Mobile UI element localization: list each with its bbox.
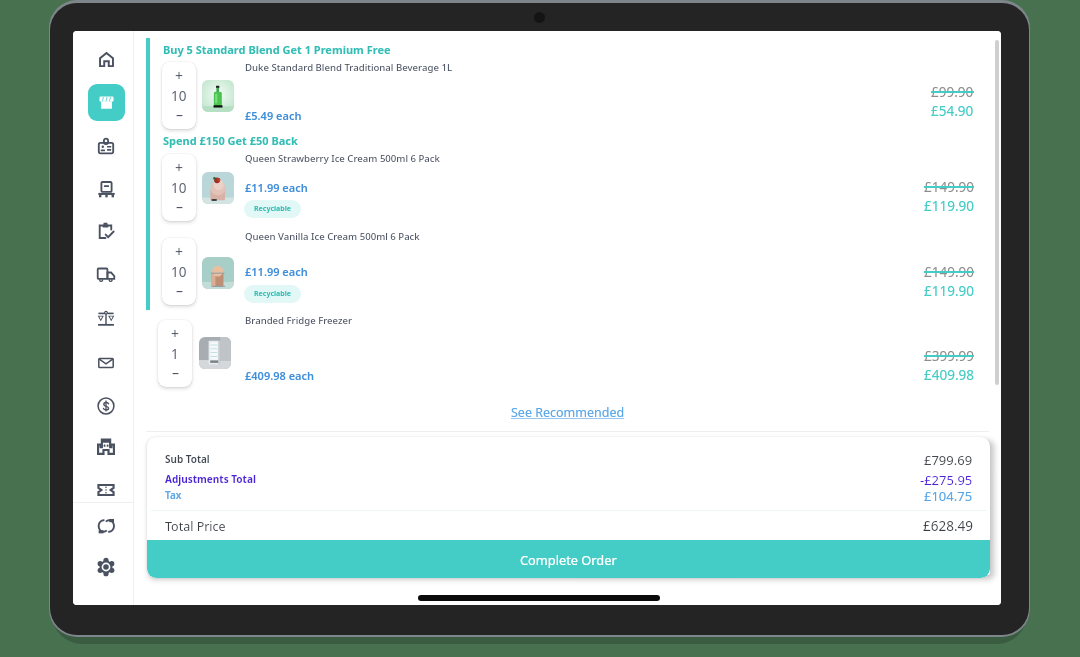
button[interactable]: Tasks bbox=[84, 213, 128, 249]
button[interactable]: Delivery bbox=[84, 257, 128, 293]
staticText: + bbox=[175, 158, 184, 177]
staticText: – bbox=[172, 363, 179, 382]
button[interactable]: Decrease quantity bbox=[162, 195, 196, 218]
button[interactable]: Account bbox=[84, 128, 128, 164]
staticText: See Recommended bbox=[511, 404, 625, 421]
staticText: + bbox=[175, 66, 184, 85]
button[interactable]: Depots bbox=[84, 428, 128, 464]
staticText: £149.90 bbox=[924, 263, 974, 281]
button[interactable]: Payments bbox=[84, 388, 128, 424]
staticText: + bbox=[171, 324, 180, 343]
staticText: £628.49 bbox=[923, 517, 973, 535]
staticText: £11.99 each bbox=[245, 180, 308, 195]
staticText: Spend £150 Get £50 Back bbox=[163, 133, 298, 148]
staticText: £11.99 each bbox=[245, 264, 308, 279]
button[interactable]: Store bbox=[88, 84, 125, 121]
button[interactable]: Home bbox=[84, 41, 128, 77]
button[interactable]: Pallets bbox=[84, 171, 128, 207]
staticText: £54.90 bbox=[931, 102, 974, 120]
staticText: – bbox=[176, 197, 183, 216]
button[interactable]: Increase quantity bbox=[162, 156, 196, 179]
staticText: 10 bbox=[171, 87, 187, 105]
button[interactable]: Increase quantity bbox=[162, 240, 196, 263]
button[interactable]: Messages bbox=[84, 345, 128, 381]
button[interactable]: Decrease quantity bbox=[162, 279, 196, 302]
staticText: Queen Strawberry Ice Cream 500ml 6 Pack bbox=[245, 152, 440, 165]
staticText: Total Price bbox=[165, 518, 226, 535]
button[interactable]: Increase quantity bbox=[158, 322, 192, 345]
button[interactable]: Complete Order bbox=[147, 540, 990, 578]
staticText: Duke Standard Blend Traditional Beverage… bbox=[245, 61, 453, 74]
staticText: 10 bbox=[171, 179, 187, 197]
staticText: £149.90 bbox=[924, 178, 974, 196]
staticText: Buy 5 Standard Blend Get 1 Premium Free bbox=[163, 42, 391, 57]
staticText: Tax bbox=[165, 488, 182, 502]
staticText: £119.90 bbox=[924, 197, 974, 215]
button[interactable]: Refresh bbox=[84, 508, 128, 544]
staticText: -£275.95 bbox=[920, 471, 973, 489]
staticText: Sub Total bbox=[165, 452, 210, 466]
staticText: Recyclable bbox=[254, 204, 291, 214]
staticText: Branded Fridge Freezer bbox=[245, 314, 353, 327]
staticText: 1 bbox=[171, 345, 179, 363]
staticText: Complete Order bbox=[520, 551, 617, 568]
staticText: £99.90 bbox=[931, 83, 974, 101]
button[interactable]: Increase quantity bbox=[162, 64, 196, 87]
staticText: £409.98 bbox=[924, 366, 974, 384]
staticText: – bbox=[176, 105, 183, 124]
staticText: £799.69 bbox=[924, 451, 973, 469]
staticText: + bbox=[175, 242, 184, 261]
staticText: Queen Vanilla Ice Cream 500ml 6 Pack bbox=[245, 230, 420, 243]
button[interactable]: Decrease quantity bbox=[158, 361, 192, 384]
staticText: Recyclable bbox=[254, 289, 291, 299]
staticText: £5.49 each bbox=[245, 108, 302, 123]
staticText: £119.90 bbox=[924, 282, 974, 300]
button[interactable]: Settings bbox=[84, 549, 128, 585]
staticText: Adjustments Total bbox=[165, 472, 256, 486]
staticText: £399.99 bbox=[924, 347, 974, 365]
staticText: £104.75 bbox=[924, 487, 973, 505]
staticText: – bbox=[176, 281, 183, 300]
staticText: £409.98 each bbox=[245, 368, 315, 383]
button[interactable]: Vouchers bbox=[84, 472, 128, 508]
button[interactable]: Compliance bbox=[84, 300, 128, 336]
button[interactable]: See Recommended bbox=[511, 404, 625, 421]
button[interactable]: Decrease quantity bbox=[162, 103, 196, 126]
staticText: 10 bbox=[171, 263, 187, 281]
